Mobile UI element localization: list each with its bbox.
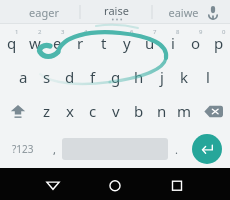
button[interactable]: n	[150, 94, 173, 128]
button[interactable]: .	[168, 130, 184, 168]
button[interactable]: eaiwe	[152, 0, 214, 24]
button[interactable]: r	[69, 26, 92, 60]
staticText: n	[157, 101, 167, 121]
staticText: .	[175, 142, 178, 157]
button[interactable]: x	[58, 94, 81, 128]
staticText: ?123	[12, 142, 34, 156]
staticText: j	[160, 67, 164, 87]
button[interactable]: Enter	[192, 134, 222, 164]
staticText: i	[171, 33, 175, 53]
staticText: 9	[199, 28, 203, 36]
staticText: r	[77, 33, 84, 53]
staticText: q	[7, 33, 17, 53]
staticText: ,	[53, 142, 56, 157]
staticText: k	[180, 67, 189, 87]
button[interactable]: Recents	[168, 176, 186, 194]
staticText: w	[29, 33, 41, 53]
staticText: g	[111, 67, 121, 87]
staticText: t	[101, 33, 107, 53]
staticText: o	[191, 33, 201, 53]
button[interactable]: b	[127, 94, 150, 128]
button[interactable]: c	[81, 94, 104, 128]
staticText: eaiwe	[168, 5, 199, 20]
staticText: f	[90, 67, 96, 87]
button[interactable]: q	[0, 26, 23, 60]
staticText: raise	[104, 3, 129, 18]
button[interactable]: i	[161, 26, 184, 60]
button[interactable]: Shift	[0, 94, 35, 128]
staticText: 6	[130, 28, 134, 36]
button[interactable]: a	[12, 60, 35, 94]
staticText: u	[145, 33, 155, 53]
button[interactable]: f	[81, 60, 104, 94]
button[interactable]: ?123	[0, 130, 46, 168]
button[interactable]: v	[104, 94, 127, 128]
staticText: 5	[107, 28, 111, 36]
staticText: m	[177, 101, 192, 121]
staticText: l	[206, 67, 210, 87]
staticText: b	[134, 101, 144, 121]
button[interactable]: d	[58, 60, 81, 94]
button[interactable]: Back	[44, 176, 62, 194]
staticText: p	[214, 33, 224, 53]
button[interactable]: s	[35, 60, 58, 94]
staticText: 3	[61, 28, 65, 36]
button[interactable]: h	[127, 60, 150, 94]
staticText: c	[89, 101, 97, 121]
staticText: h	[134, 67, 144, 87]
button[interactable]: o	[184, 26, 207, 60]
button[interactable]: Backspace	[196, 94, 230, 128]
button[interactable]: k	[173, 60, 196, 94]
button[interactable]: raise	[82, 0, 150, 24]
staticText: 0	[222, 28, 226, 36]
button[interactable]: y	[115, 26, 138, 60]
button[interactable]: t	[92, 26, 115, 60]
button[interactable]: p	[207, 26, 230, 60]
staticText: 2	[38, 28, 42, 36]
button[interactable]: eager	[8, 0, 80, 24]
button[interactable]: l	[196, 60, 219, 94]
button[interactable]: w	[23, 26, 46, 60]
staticText: v	[112, 101, 120, 121]
staticText: 4	[84, 28, 88, 36]
button[interactable]: m	[173, 94, 196, 128]
staticText: e	[53, 33, 62, 53]
button[interactable]: e	[46, 26, 69, 60]
staticText: z	[43, 101, 51, 121]
staticText: a	[19, 67, 28, 87]
staticText: 1	[15, 28, 19, 36]
button[interactable]: g	[104, 60, 127, 94]
staticText: 7	[153, 28, 157, 36]
button[interactable]: ,	[46, 130, 62, 168]
button[interactable]: Voice input	[203, 2, 223, 22]
button[interactable]: z	[35, 94, 58, 128]
staticText: eager	[29, 5, 59, 20]
staticText: y	[123, 33, 131, 53]
staticText: s	[43, 67, 51, 87]
button[interactable]: u	[138, 26, 161, 60]
button[interactable]: j	[150, 60, 173, 94]
staticText: x	[66, 101, 74, 121]
staticText: d	[65, 67, 75, 87]
staticText: 8	[176, 28, 180, 36]
button[interactable]: Home	[106, 176, 124, 194]
